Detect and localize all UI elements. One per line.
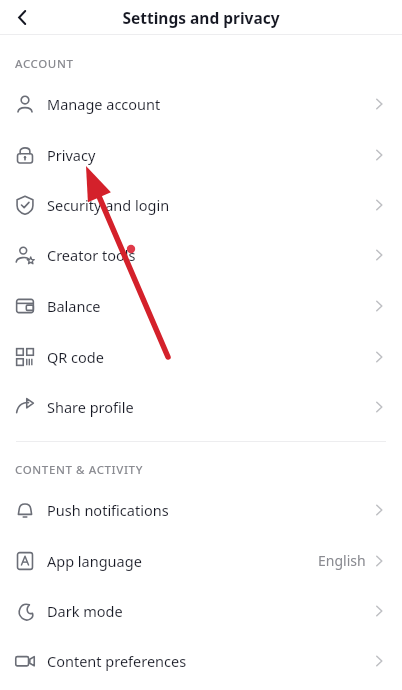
staticText: Manage account — [47, 94, 161, 114]
button[interactable]: QR code — [0, 331, 402, 382]
button[interactable]: Push notifications — [0, 484, 402, 535]
staticText: Balance — [47, 296, 101, 316]
staticText: Creator tools — [47, 245, 136, 265]
staticText: CONTENT & ACTIVITY — [15, 462, 143, 478]
button[interactable]: App language — [0, 535, 402, 586]
button[interactable]: Security and login — [0, 180, 402, 230]
button[interactable]: Manage account — [0, 78, 402, 129]
staticText: ACCOUNT — [15, 56, 74, 72]
staticText: Settings and privacy — [122, 7, 280, 28]
button[interactable]: Dark mode — [0, 586, 402, 636]
staticText: Content preferences — [47, 651, 187, 671]
staticText: Push notifications — [47, 500, 169, 520]
staticText: Share profile — [47, 397, 134, 417]
button[interactable]: Content preferences — [0, 636, 402, 686]
button[interactable]: Privacy — [0, 129, 402, 180]
staticText: QR code — [47, 347, 104, 367]
staticText: App language — [47, 551, 142, 571]
button[interactable]: Back — [0, 0, 44, 34]
button[interactable]: Balance — [0, 280, 402, 331]
staticText: Privacy — [47, 145, 96, 165]
staticText: Dark mode — [47, 601, 123, 621]
staticText: English — [318, 551, 366, 570]
button[interactable]: Share profile — [0, 382, 402, 432]
staticText: Security and login — [47, 195, 170, 215]
button[interactable]: Creator tools — [0, 230, 402, 280]
